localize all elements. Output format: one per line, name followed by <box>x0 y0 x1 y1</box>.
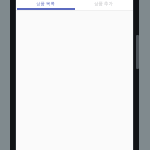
other: Power button <box>136 35 139 69</box>
button[interactable]: 상품 목록 <box>16 0 74 10</box>
button[interactable]: 상품 추가 <box>74 0 133 10</box>
staticText: 상품 추가 <box>94 1 113 7</box>
staticText: 상품 목록 <box>36 1 55 7</box>
